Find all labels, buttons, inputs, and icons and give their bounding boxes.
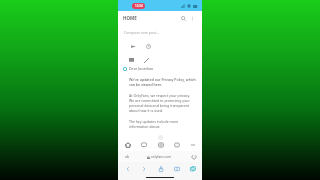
button[interactable]: Text size [123, 153, 130, 160]
staticText: aA [125, 155, 129, 159]
button[interactable]: Schedule [144, 42, 152, 50]
button[interactable]: Bookmarks [171, 163, 182, 174]
staticText: onlyfans.com [151, 155, 172, 159]
staticText: The key updates include more information… [129, 119, 196, 129]
staticText: We've updated our Privacy Policy, which … [129, 77, 196, 87]
button[interactable]: Home [122, 139, 133, 150]
button[interactable]: Share [155, 163, 166, 174]
staticText: 12:34 [135, 4, 143, 8]
staticText: Dear Jonathan [129, 66, 154, 71]
button[interactable]: Back [122, 163, 133, 174]
button[interactable]: More options [188, 14, 197, 23]
button[interactable]: Messages [138, 139, 149, 150]
staticText: HOME [123, 15, 137, 21]
button[interactable]: Notifications [171, 139, 182, 150]
button[interactable]: Send [129, 42, 137, 50]
staticText: At OnlyFans, we respect your privacy. We… [129, 93, 196, 113]
button[interactable]: Dear Jonathan [123, 66, 202, 71]
button[interactable]: Forward [138, 163, 149, 174]
staticText: Compose new post... [124, 30, 160, 35]
button[interactable]: onlyfans.com [147, 155, 172, 159]
button[interactable]: Compose new post... [118, 25, 202, 39]
button[interactable]: More [187, 139, 198, 150]
button[interactable]: Attach image [127, 56, 135, 64]
button[interactable]: Reload [190, 153, 197, 160]
button[interactable]: Search [179, 14, 188, 23]
button[interactable]: Edit [142, 56, 150, 64]
button[interactable]: Tabs [187, 163, 198, 174]
button[interactable]: Collections [155, 139, 166, 150]
